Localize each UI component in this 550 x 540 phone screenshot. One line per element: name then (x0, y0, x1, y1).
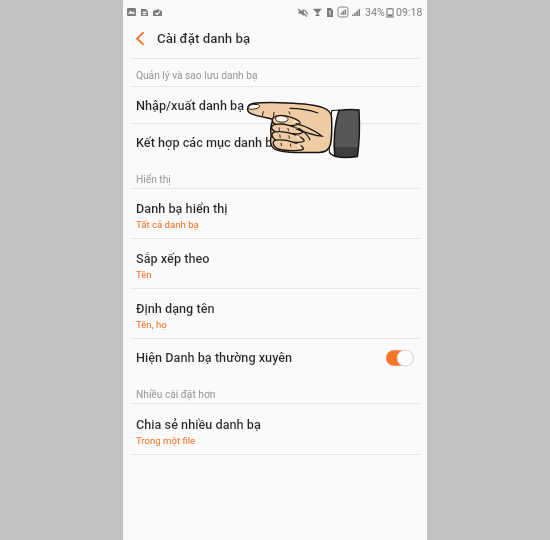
staticText: Tất cả danh bạ (136, 219, 199, 230)
staticText: Hiển thị (136, 174, 171, 186)
staticText: Quản lý và sao lưu danh bạ (136, 70, 258, 82)
staticText: Nhập/xuất danh bạ (136, 98, 245, 113)
staticText: Trong một file (136, 435, 196, 446)
button[interactable]: Nhập/xuất danh bạ (123, 87, 427, 123)
staticText: Danh bạ hiển thị (136, 201, 228, 216)
button[interactable]: Danh bạ hiển thị (123, 189, 427, 238)
staticText: Kết hợp các mục danh bạ (136, 135, 280, 150)
button[interactable]: Sắp xếp theo (123, 239, 427, 288)
button[interactable]: Hiện Danh bạ thường xuyên (123, 339, 427, 376)
staticText: Tên (136, 269, 152, 280)
staticText: Định dạng tên (136, 301, 215, 316)
staticText: Hiện Danh bạ thường xuyên (136, 350, 293, 365)
button[interactable]: Định dạng tên (123, 289, 427, 338)
button[interactable]: Hiện Danh bạ thường xuyên (386, 349, 414, 367)
staticText: Tên, họ (136, 319, 167, 330)
button[interactable]: Kết hợp các mục danh bạ (123, 124, 427, 161)
staticText: Sắp xếp theo (136, 251, 210, 266)
staticText: Nhiều cài đặt hơn (136, 389, 216, 401)
staticText: Chia sẻ nhiều danh bạ (136, 417, 261, 432)
button[interactable]: Back (123, 24, 157, 53)
button[interactable]: Chia sẻ nhiều danh bạ (123, 404, 427, 454)
staticText: 34% (365, 6, 385, 18)
staticText: 09:18 (396, 6, 423, 18)
staticText: Cài đặt danh bạ (157, 31, 251, 47)
